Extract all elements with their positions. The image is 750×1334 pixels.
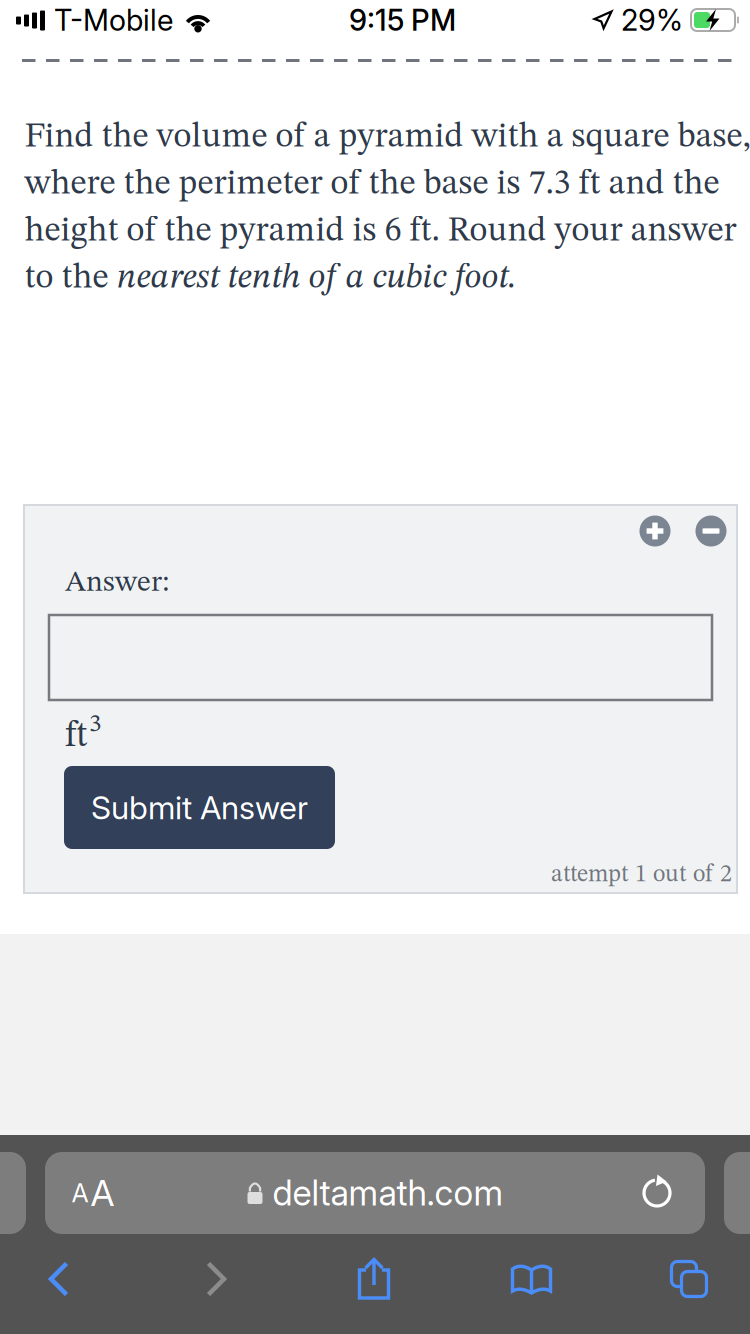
staticText: Submit Answer bbox=[91, 788, 308, 827]
button[interactable]: Forward bbox=[157, 1248, 275, 1310]
staticText: to the nearest tenth of a cubic foot. bbox=[24, 262, 516, 295]
staticText: 9:15 PM bbox=[349, 2, 456, 38]
staticText: attempt 1 out of 2 bbox=[551, 863, 732, 887]
button[interactable]: Decrease size bbox=[694, 514, 728, 548]
staticText: 29% bbox=[621, 2, 683, 38]
button[interactable]: Show tabs bbox=[630, 1248, 748, 1310]
staticText: where the perimeter of the base is 7.3 f… bbox=[24, 167, 719, 202]
staticText: height of the pyramid is 6 ft. Round you… bbox=[24, 214, 736, 249]
staticText: deltamath.com bbox=[272, 1172, 503, 1214]
button[interactable]: Text size options bbox=[45, 1152, 141, 1234]
staticText: 3 bbox=[89, 712, 102, 737]
button[interactable]: Reload page bbox=[609, 1152, 705, 1234]
button[interactable]: Submit Answer bbox=[64, 766, 335, 849]
staticText: T-Mobile bbox=[54, 2, 173, 38]
staticText: Answer: bbox=[65, 568, 169, 598]
button[interactable]: Share bbox=[315, 1248, 433, 1310]
staticText: ft bbox=[65, 718, 87, 754]
button[interactable]: Bookmarks bbox=[472, 1248, 590, 1310]
button[interactable]: Back bbox=[0, 1248, 118, 1310]
button[interactable]: Increase size bbox=[638, 514, 672, 548]
staticText: A bbox=[90, 1171, 114, 1215]
staticText: Find the volume of a pyramid with a squa… bbox=[24, 120, 750, 155]
staticText: A bbox=[71, 1178, 88, 1208]
